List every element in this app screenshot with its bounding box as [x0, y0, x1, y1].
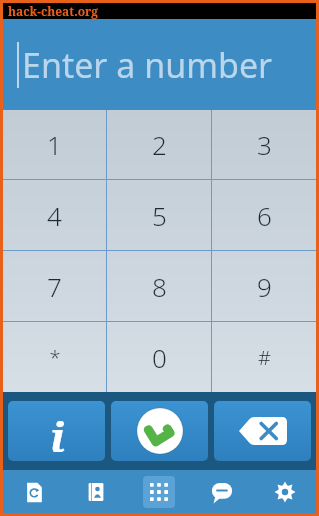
- button[interactable]: Messages: [190, 470, 253, 513]
- staticText: 8: [152, 269, 167, 304]
- staticText: 7: [47, 269, 62, 304]
- staticText: hack-cheat.org: [8, 3, 99, 19]
- button[interactable]: 8: [107, 251, 211, 321]
- staticText: 4: [47, 198, 62, 233]
- button[interactable]: 4: [3, 180, 106, 250]
- button[interactable]: Backspace: [214, 401, 311, 461]
- button[interactable]: 7: [3, 251, 106, 321]
- button[interactable]: Dialpad: [127, 470, 190, 513]
- staticText: *: [49, 344, 61, 371]
- button[interactable]: 9: [212, 251, 316, 321]
- button[interactable]: 1: [3, 110, 106, 179]
- button[interactable]: Settings: [253, 470, 316, 513]
- button[interactable]: Enter a number: [3, 19, 316, 110]
- staticText: #: [258, 344, 271, 371]
- button[interactable]: Call: [111, 401, 208, 461]
- staticText: 6: [257, 198, 272, 233]
- button[interactable]: #: [212, 322, 316, 392]
- button[interactable]: 0: [107, 322, 211, 392]
- button[interactable]: 5: [107, 180, 211, 250]
- staticText: Enter a number: [22, 42, 273, 88]
- staticText: 9: [257, 269, 272, 304]
- staticText: 0: [152, 340, 167, 375]
- button[interactable]: Call details: [8, 401, 105, 461]
- button[interactable]: 6: [212, 180, 316, 250]
- button[interactable]: Call log: [3, 470, 65, 513]
- button[interactable]: Contacts: [65, 470, 127, 513]
- button[interactable]: 2: [107, 110, 211, 179]
- staticText: 2: [152, 127, 167, 162]
- staticText: 3: [257, 127, 272, 162]
- staticText: i: [50, 408, 65, 452]
- staticText: 1: [47, 127, 62, 162]
- button[interactable]: *: [3, 322, 106, 392]
- staticText: 5: [152, 198, 167, 233]
- button[interactable]: 3: [212, 110, 316, 179]
